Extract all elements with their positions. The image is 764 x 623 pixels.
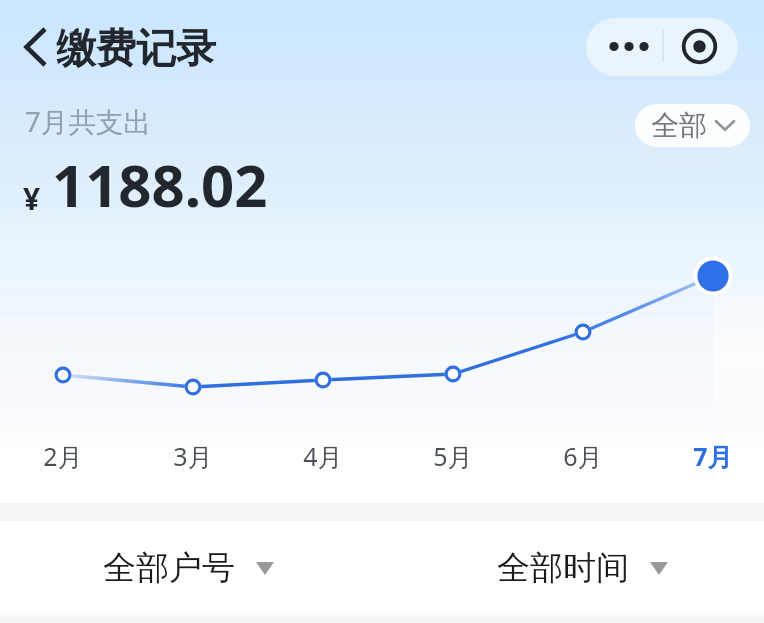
button[interactable]: More options: [586, 18, 738, 76]
button[interactable]: 全部时间: [497, 533, 668, 603]
button[interactable]: 3月: [158, 439, 228, 473]
button[interactable]: 2月: [28, 439, 98, 473]
staticText: 7月: [693, 439, 733, 473]
staticText: ¥: [23, 178, 41, 219]
button[interactable]: 4月: [288, 439, 358, 473]
staticText: 4月: [303, 439, 343, 473]
staticText: 全部户号: [103, 547, 235, 589]
staticText: 5月: [433, 439, 473, 473]
staticText: 缴费记录: [56, 23, 216, 73]
button[interactable]: 全部: [635, 104, 750, 147]
staticText: 3月: [173, 439, 213, 473]
staticText: 6月: [563, 439, 603, 473]
button[interactable]: 全部户号: [103, 533, 274, 603]
button[interactable]: 6月: [548, 439, 618, 473]
staticText: 1188.02: [52, 145, 268, 224]
button[interactable]: 7月: [678, 439, 748, 473]
button[interactable]: 5月: [418, 439, 488, 473]
staticText: 7月共支出: [25, 103, 151, 141]
staticText: 2月: [43, 439, 83, 473]
button[interactable]: Back: [6, 20, 58, 74]
staticText: 全部: [651, 108, 707, 143]
staticText: 全部时间: [497, 547, 629, 589]
